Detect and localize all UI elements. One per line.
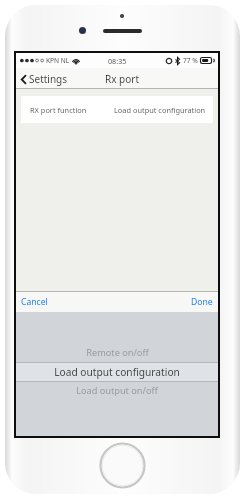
staticText: Done — [191, 296, 213, 308]
staticText: KPN NL — [46, 56, 70, 65]
button[interactable]: Back — [16, 69, 73, 89]
button[interactable]: Load output configuration — [16, 362, 218, 381]
staticText: 77 % — [183, 56, 198, 65]
staticText: Load output configuration — [54, 365, 180, 379]
staticText: Cancel — [21, 296, 48, 308]
staticText: 08:35 — [108, 56, 127, 66]
staticText: Rx port — [105, 72, 140, 86]
button[interactable]: Done — [186, 292, 218, 312]
staticText: RX port function — [30, 105, 87, 115]
button[interactable]: RX port function — [21, 96, 213, 123]
staticText: Load output on/off — [76, 384, 158, 397]
button[interactable]: Remote on/off — [16, 343, 218, 362]
staticText: Load output configuration — [114, 105, 206, 115]
other: Back — [21, 75, 26, 84]
staticText: Settings — [29, 72, 68, 86]
staticText: Remote on/off — [86, 346, 149, 359]
button[interactable]: Load output on/off — [16, 381, 218, 400]
button[interactable]: Cancel — [16, 292, 53, 312]
